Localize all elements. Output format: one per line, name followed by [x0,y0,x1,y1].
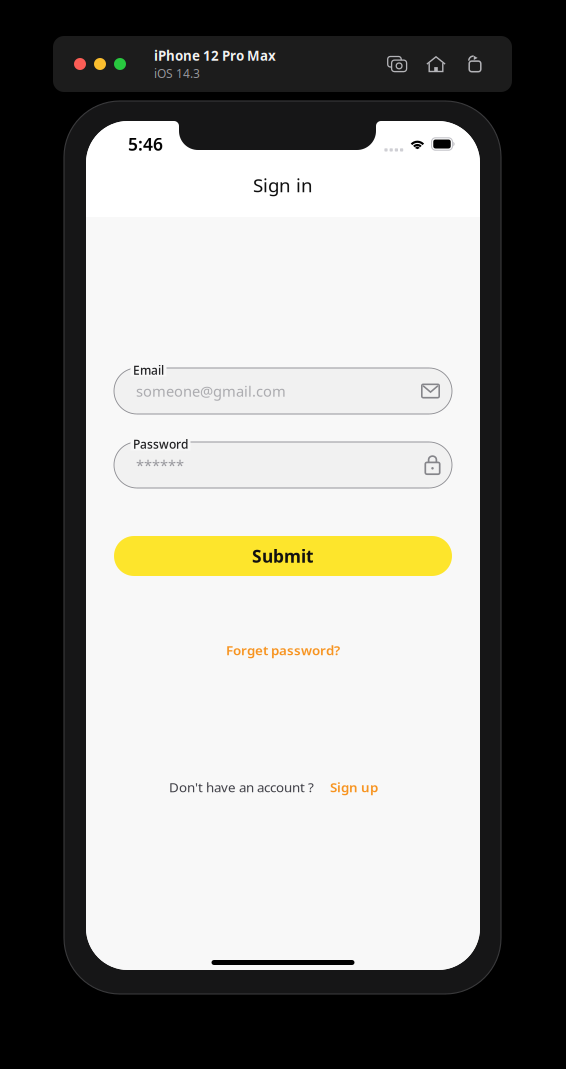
button[interactable]: Rotate [465,55,482,72]
staticText: someone@gmail.com [136,381,286,401]
staticText: Sign up [330,778,378,796]
button[interactable]: Submit [114,536,452,576]
staticText: Submit [252,544,314,567]
button[interactable]: Home [426,55,446,72]
staticText: 5:46 [128,132,163,155]
button[interactable]: Forget password? [114,642,452,658]
staticText: Forget password? [226,641,340,659]
staticText: Don't have an account ? [169,778,314,796]
button[interactable]: Screenshot [387,55,407,72]
staticText: Email [133,362,164,378]
staticText: Password [133,436,188,452]
staticText: Sign in [253,173,313,197]
staticText: iPhone 12 Pro Max [154,47,276,64]
staticText: ****** [136,455,184,475]
staticText: iOS 14.3 [154,65,200,81]
button[interactable]: Sign up [330,778,378,796]
